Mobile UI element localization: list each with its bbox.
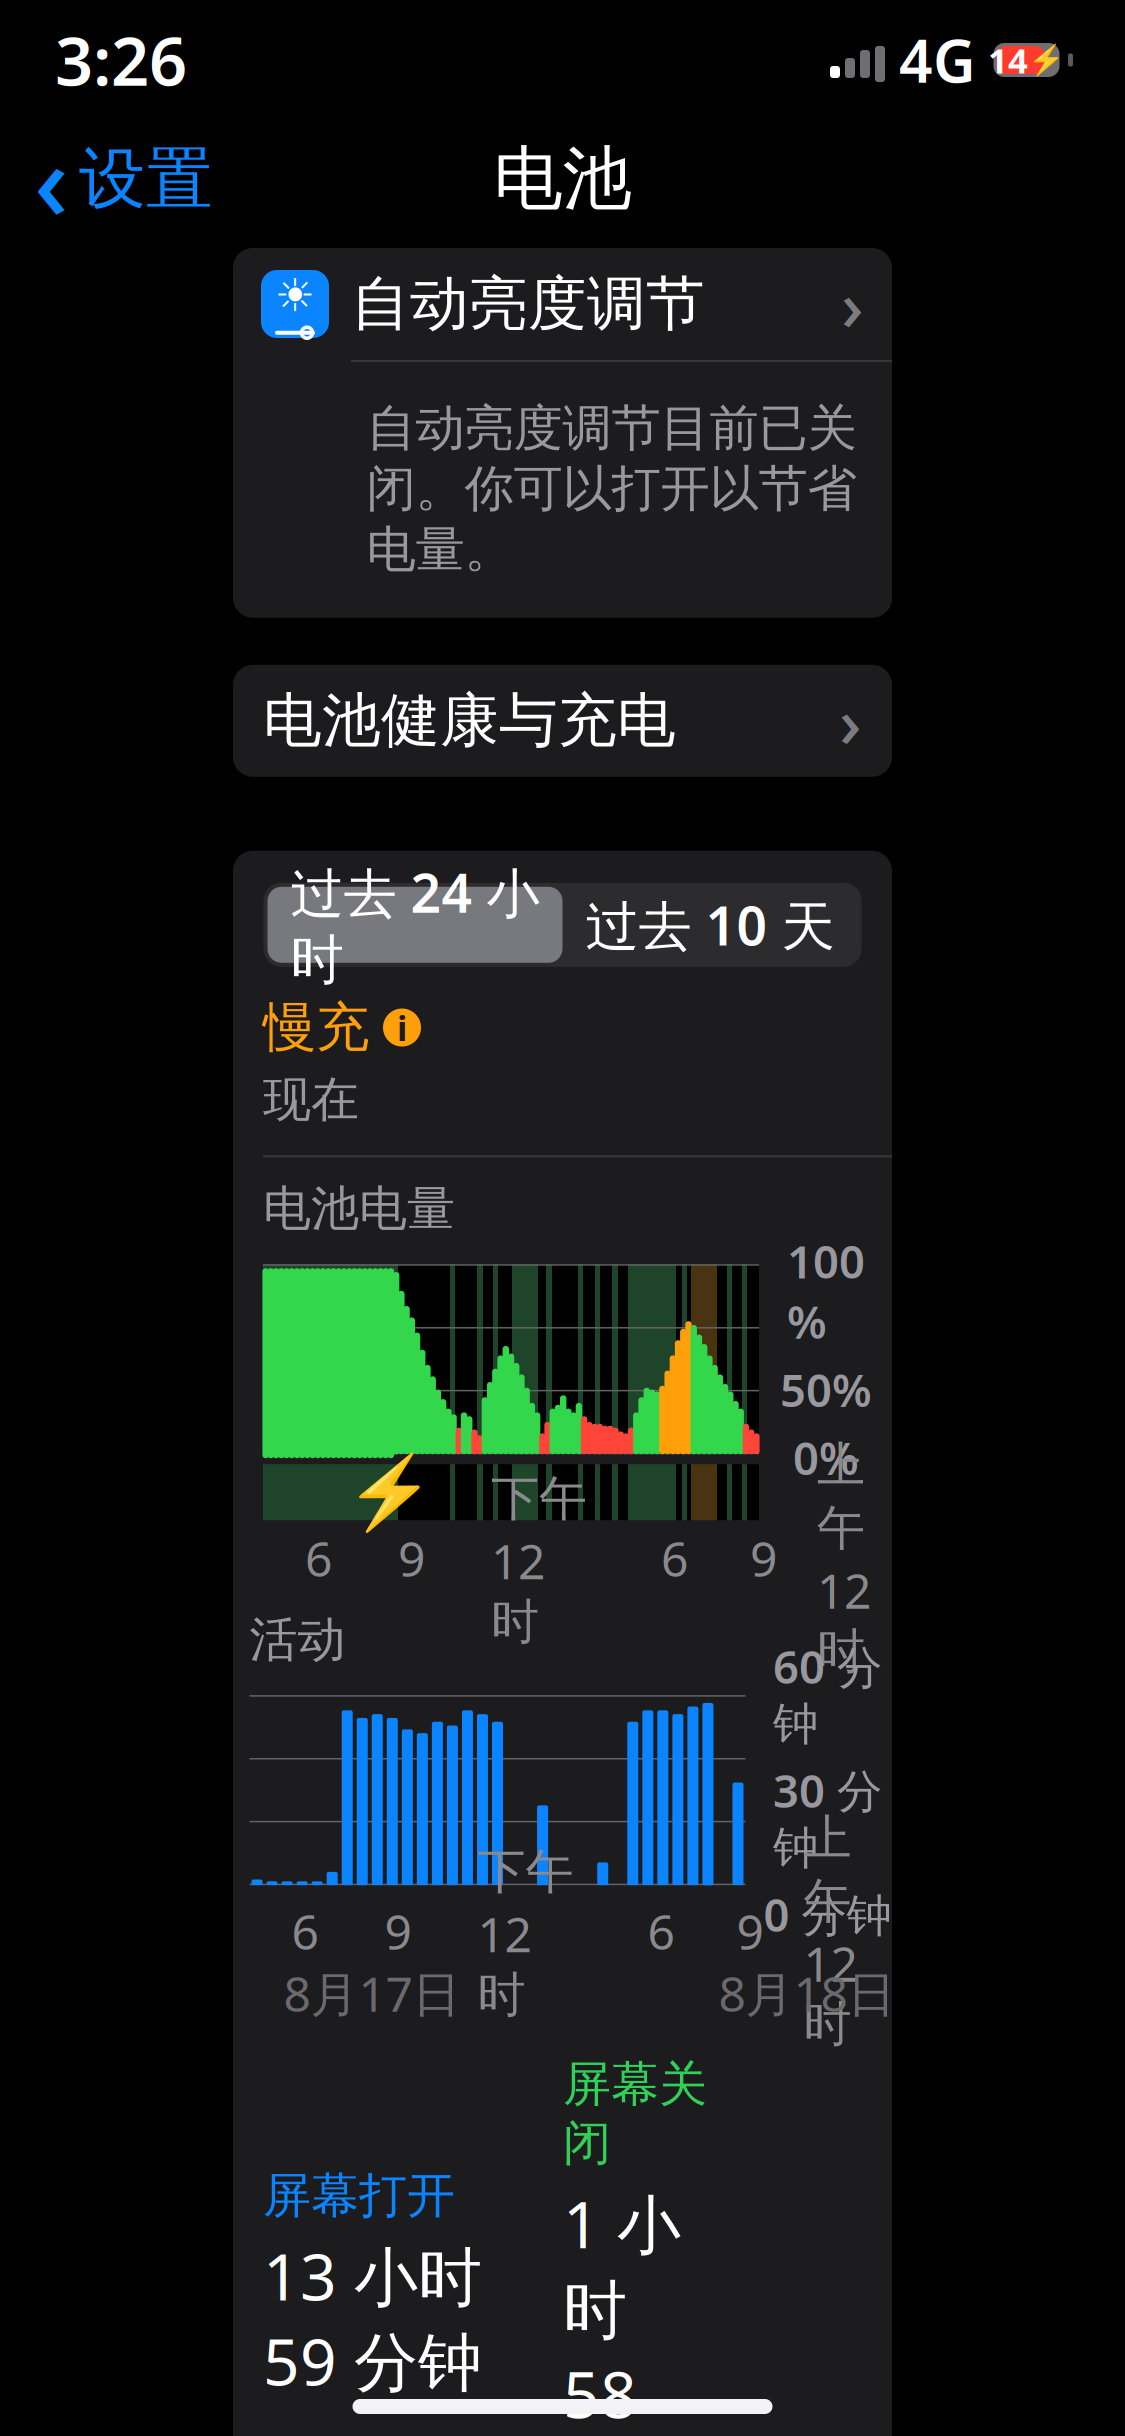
staticText: 60 分钟 [773, 1636, 882, 1752]
staticText: 8月17日 [283, 1961, 460, 2025]
staticText: 3:26 [55, 16, 187, 104]
staticText: 电池电量 [263, 1179, 455, 1238]
staticText: 13 小时 59 分钟 [263, 2233, 482, 2403]
staticText: 6 [647, 1899, 674, 1963]
staticText: 活动 [249, 1610, 345, 1669]
staticText: ⚡ [345, 1451, 435, 1533]
button[interactable]: 过去 10 天 [562, 887, 857, 963]
staticText: 自动亮度调节 [351, 268, 705, 340]
staticText: 上午 12 时 [803, 1808, 857, 2054]
staticText: ⚡ [1028, 43, 1065, 77]
staticText: 过去 10 天 [585, 889, 834, 960]
staticText: ‹ [34, 108, 69, 250]
staticText: 过去 24 小时 [290, 857, 539, 993]
staticText: 6 [291, 1899, 318, 1963]
staticText: 9 [750, 1526, 777, 1590]
staticText: ☀ [274, 270, 315, 321]
staticText: 设置 [79, 138, 213, 220]
staticText: 电池健康与充电 [263, 685, 676, 757]
staticText: 上午 12 时 [817, 1435, 871, 1681]
staticText: 现在 [263, 1070, 359, 1129]
button[interactable]: ‹ [0, 98, 213, 260]
staticText: › [841, 258, 864, 350]
staticText: 100% [787, 1231, 865, 1351]
staticText: 电池 [493, 136, 631, 222]
button[interactable]: 过去 24 小时 [267, 887, 562, 963]
staticText: 1 小时 58 分钟 [563, 2181, 691, 2436]
button[interactable]: ☀ [233, 248, 892, 360]
staticText: 6 [661, 1526, 688, 1590]
staticText: 30 分钟 [773, 1760, 882, 1876]
staticText: 屏幕打开 [263, 2166, 455, 2225]
staticText: 6 [305, 1526, 332, 1590]
staticText: 9 [384, 1899, 411, 1963]
staticText: 0% [793, 1427, 859, 1488]
staticText: 14 [988, 37, 1028, 83]
staticText: 9 [736, 1899, 763, 1963]
staticText: 下午 12 时 [491, 1465, 587, 1651]
staticText: › [839, 675, 862, 767]
staticText: 50% [780, 1359, 872, 1419]
staticText: 4G [899, 21, 976, 99]
button[interactable]: 电池健康与充电 [233, 665, 892, 777]
staticText: 0 分钟 [763, 1884, 891, 1944]
staticText: i [397, 1004, 407, 1050]
staticText: 自动亮度调节目前已关闭。你可以打开以节省电量。 [366, 398, 856, 580]
staticText: 下午 12 时 [477, 1838, 573, 2024]
staticText: 8月18日 [718, 1961, 895, 2025]
staticText: 屏幕关闭 [563, 2055, 707, 2173]
staticText: 慢充 [263, 995, 369, 1060]
staticText: 9 [398, 1526, 425, 1590]
